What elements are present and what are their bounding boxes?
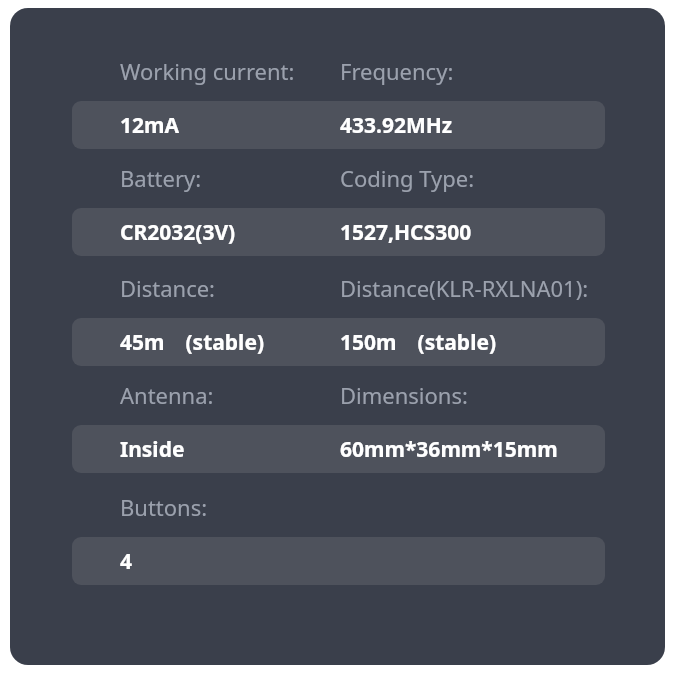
staticText: Buttons: bbox=[120, 492, 208, 522]
staticText: Inside bbox=[120, 435, 185, 464]
button[interactable] bbox=[72, 425, 605, 473]
staticText: Antenna: bbox=[120, 380, 214, 410]
staticText: CR2032(3V) bbox=[120, 218, 236, 247]
staticText: Frequency: bbox=[340, 56, 454, 86]
staticText: Working current: bbox=[120, 56, 295, 86]
staticText: 4 bbox=[120, 547, 133, 576]
staticText: 45m (stable) bbox=[120, 328, 265, 357]
button[interactable] bbox=[72, 208, 605, 256]
staticText: Battery: bbox=[120, 163, 202, 193]
button[interactable] bbox=[72, 537, 605, 585]
button[interactable] bbox=[72, 318, 605, 366]
button[interactable] bbox=[72, 101, 605, 149]
staticText: Distance(KLR-RXLNA01): bbox=[340, 273, 589, 303]
staticText: Coding Type: bbox=[340, 163, 475, 193]
staticText: 60mm*36mm*15mm bbox=[340, 435, 558, 464]
staticText: 1527,HCS300 bbox=[340, 218, 472, 247]
staticText: Distance: bbox=[120, 273, 216, 303]
staticText: 12mA bbox=[120, 111, 180, 140]
staticText: 150m (stable) bbox=[340, 328, 497, 357]
staticText: 433.92MHz bbox=[340, 111, 453, 140]
staticText: Dimensions: bbox=[340, 380, 468, 410]
